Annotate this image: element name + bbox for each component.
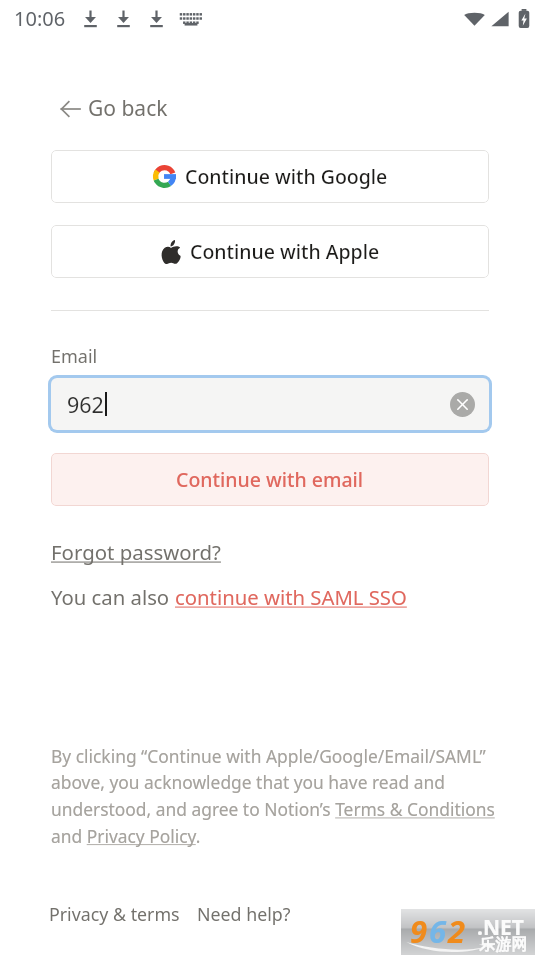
staticText: Continue with Google [185,163,388,190]
button[interactable]: Continue with Apple [51,225,489,278]
button[interactable]: Privacy & terms [49,902,180,926]
staticText: Email [51,344,98,369]
staticText: You can also [51,583,175,611]
button[interactable]: Continue with email [51,453,489,506]
staticText: Need help? [197,902,291,926]
button[interactable]: Need help? [197,902,291,926]
button[interactable]: continue with SAML SSO [175,583,407,611]
button[interactable]: 962 [51,378,489,430]
staticText: Privacy & terms [49,902,180,926]
staticText: 乐游网 [479,935,527,955]
staticText: 2 [448,910,466,952]
staticText: 962 [67,390,104,419]
button[interactable]: Clear text [450,392,475,417]
staticText: 10:06 [14,5,66,32]
staticText: By clicking “Continue with Apple/Google/… [51,744,499,848]
button[interactable]: Forgot password? [51,538,221,566]
button[interactable]: Go back [51,92,174,125]
button[interactable]: Continue with Google [51,150,489,203]
staticText: Continue with Apple [190,238,380,265]
staticText: Forgot password? [51,538,221,566]
staticText: Continue with email [176,466,364,493]
staticText: .NET [477,913,524,942]
staticText: 6 [429,910,447,952]
staticText: continue with SAML SSO [175,583,407,611]
staticText: 9 [410,910,428,952]
staticText: Go back [88,94,168,123]
